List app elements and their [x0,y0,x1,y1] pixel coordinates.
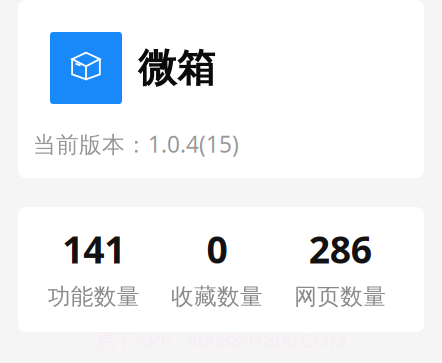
staticText: 易下APP · 4008891800.COM [95,327,347,354]
staticText: 网页数量 [294,283,386,311]
staticText: 功能数量 [48,283,140,311]
staticText: 141 [62,224,125,274]
staticText: 收藏数量 [171,283,263,311]
staticText: 微箱 [138,44,216,92]
staticText: 当前版本：1.0.4(15) [33,129,239,159]
staticText: 286 [309,224,372,274]
button[interactable]: 0 [155,224,279,311]
button[interactable]: 286 [279,224,402,311]
button[interactable]: 141 [32,224,155,311]
staticText: 0 [206,224,227,274]
